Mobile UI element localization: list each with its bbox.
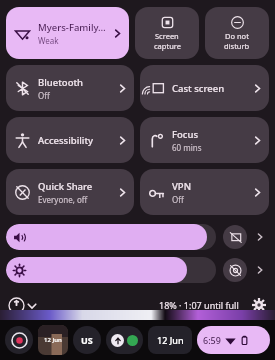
staticText: 12 Jun xyxy=(157,334,184,346)
button[interactable]: Notifications xyxy=(106,326,143,354)
button[interactable]: Camera xyxy=(5,326,33,354)
button[interactable]: Bluetooth xyxy=(6,65,134,111)
staticText: 60 mins xyxy=(172,142,202,153)
button[interactable]: Settings xyxy=(249,295,269,315)
button[interactable]: Screen capture xyxy=(135,7,199,59)
staticText: Focus xyxy=(172,128,199,141)
staticText: 6:59 xyxy=(203,334,221,346)
staticText: Everyone, off xyxy=(38,194,88,205)
staticText: 18% · 1:07 until full xyxy=(159,299,239,311)
staticText: Weak xyxy=(38,35,59,46)
button[interactable]: Volume xyxy=(6,224,216,250)
staticText: Do not xyxy=(225,31,249,41)
staticText: Quick Share xyxy=(38,180,93,193)
staticText: 12 Jun xyxy=(44,336,62,344)
button[interactable]: Power menu xyxy=(6,297,39,314)
button[interactable]: Auto brightness xyxy=(223,258,247,282)
button[interactable]: Accessibility xyxy=(6,117,134,163)
button[interactable]: Quick Share xyxy=(6,169,134,215)
button[interactable]: Do not disturb xyxy=(205,7,269,59)
staticText: capture xyxy=(154,41,181,51)
staticText: Myers-Family… xyxy=(38,21,106,34)
staticText: VPN xyxy=(172,180,192,193)
button[interactable]: Internet xyxy=(6,7,129,59)
button[interactable]: US xyxy=(73,326,101,354)
staticText: Cast screen xyxy=(172,82,225,95)
button[interactable]: Media output xyxy=(223,225,247,249)
staticText: Off xyxy=(172,194,184,205)
staticText: Off xyxy=(38,90,50,101)
staticText: US xyxy=(81,334,93,346)
button[interactable]: Media output details xyxy=(251,228,269,246)
button[interactable]: Status xyxy=(197,326,270,354)
button[interactable]: Brightness xyxy=(6,257,216,283)
button[interactable]: Photos xyxy=(38,325,68,355)
button[interactable]: 12 Jun xyxy=(148,326,192,354)
staticText: disturb xyxy=(224,41,250,51)
button[interactable]: Cast screen xyxy=(140,65,269,111)
staticText: Accessibility xyxy=(38,134,94,147)
button[interactable]: Focus xyxy=(140,117,269,163)
button[interactable]: VPN xyxy=(140,169,269,215)
button[interactable]: Auto brightness details xyxy=(251,261,269,279)
staticText: Screen xyxy=(155,31,179,41)
staticText: Bluetooth xyxy=(38,76,84,89)
